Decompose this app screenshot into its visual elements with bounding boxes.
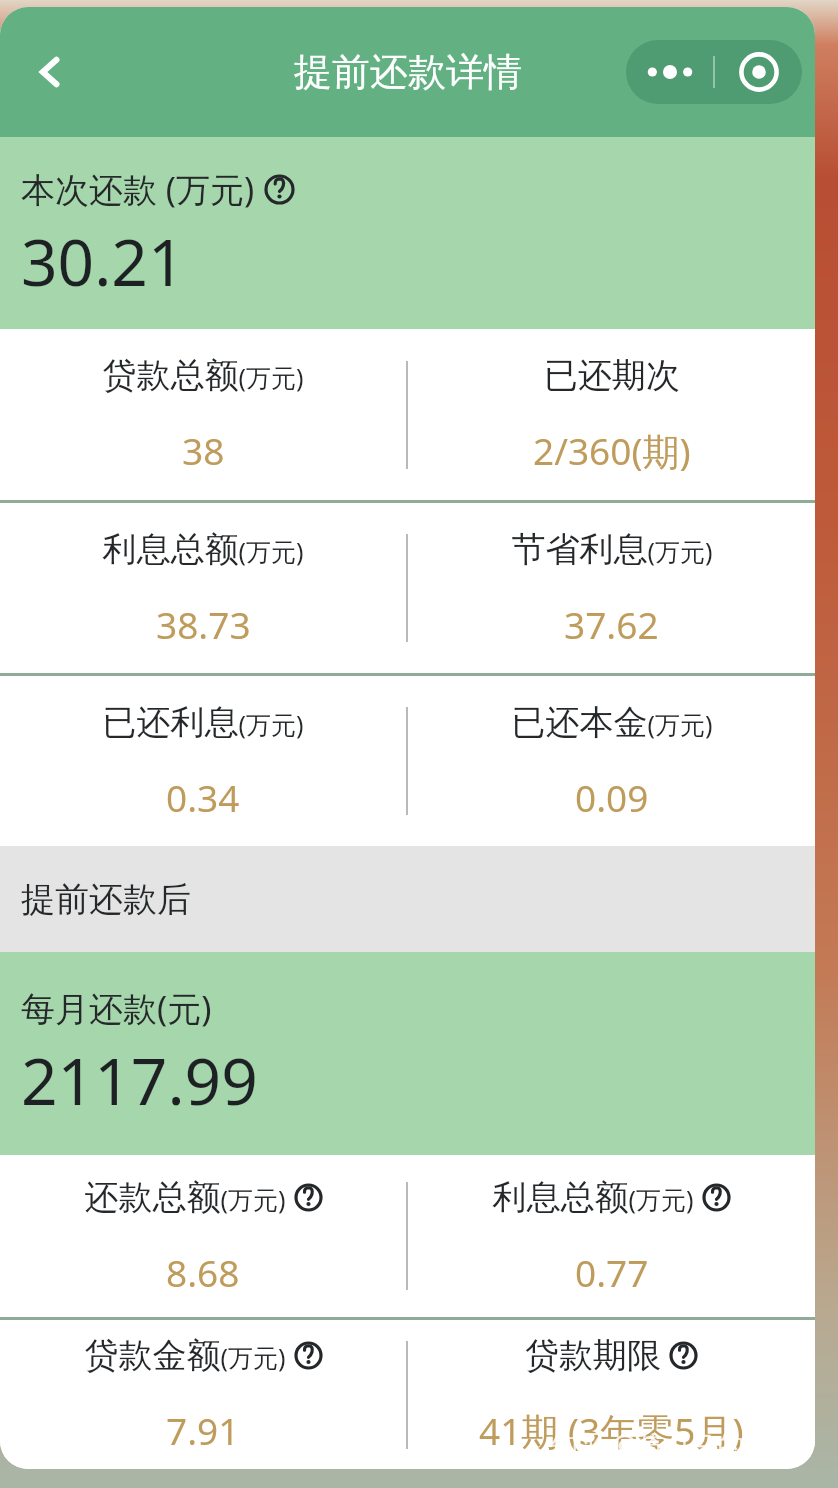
button[interactable]: 贷款期限 (408, 1320, 815, 1469)
staticText: 0.77 (575, 1247, 649, 1297)
staticText: 已还期次 (544, 354, 680, 397)
staticText: 7.91 (166, 1405, 240, 1455)
staticText: 37.62 (564, 599, 659, 649)
button[interactable]: 利息总额(万元) (0, 503, 406, 673)
staticText: 2/360(期) (533, 425, 691, 476)
staticText: 0.34 (166, 772, 240, 822)
button[interactable]: 已还利息(万元) (0, 676, 406, 846)
button[interactable]: 利息总额(万元) (408, 1155, 815, 1317)
staticText: 已还利息(万元) (102, 701, 304, 744)
staticText: 知乎 @骑白马的大汉 (551, 1426, 799, 1463)
staticText: 提前还款后 (21, 878, 191, 921)
staticText: 还款总额(万元) (84, 1176, 286, 1219)
button[interactable]: 节省利息(万元) (408, 503, 815, 673)
button[interactable]: 还款总额(万元) (0, 1155, 406, 1317)
staticText: 30.21 (21, 218, 185, 305)
staticText: 2117.99 (21, 1037, 258, 1124)
staticText: 38.73 (156, 599, 251, 649)
staticText: 利息总额(万元) (102, 528, 304, 571)
button[interactable]: 贷款总额(万元) (0, 329, 406, 500)
staticText: 本次还款 (万元) (21, 166, 255, 212)
staticText: 贷款期限 (525, 1334, 661, 1377)
staticText: 38 (182, 425, 225, 475)
staticText: 已还本金(万元) (511, 701, 713, 744)
staticText: 每月还款(元) (21, 985, 212, 1031)
staticText: 41期 (3年零5月) (479, 1405, 744, 1456)
staticText: 节省利息(万元) (511, 528, 713, 571)
staticText: 贷款金额(万元) (84, 1334, 286, 1377)
button[interactable]: Close (715, 40, 802, 104)
button[interactable]: 已还期次 (408, 329, 815, 500)
staticText: 0.09 (575, 772, 649, 822)
staticText: 利息总额(万元) (492, 1176, 694, 1219)
button[interactable]: 已还本金(万元) (408, 676, 815, 846)
staticText: 提前还款详情 (294, 48, 522, 96)
button[interactable]: Back (20, 42, 80, 102)
button[interactable]: More options (626, 40, 713, 104)
staticText: 贷款总额(万元) (102, 354, 304, 397)
staticText: 8.68 (166, 1247, 240, 1297)
button[interactable]: 贷款金额(万元) (0, 1320, 406, 1469)
